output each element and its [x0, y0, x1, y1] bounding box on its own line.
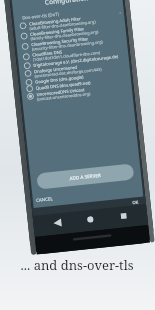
button[interactable]: dns-over-tls screenshot	[0, 0, 155, 310]
